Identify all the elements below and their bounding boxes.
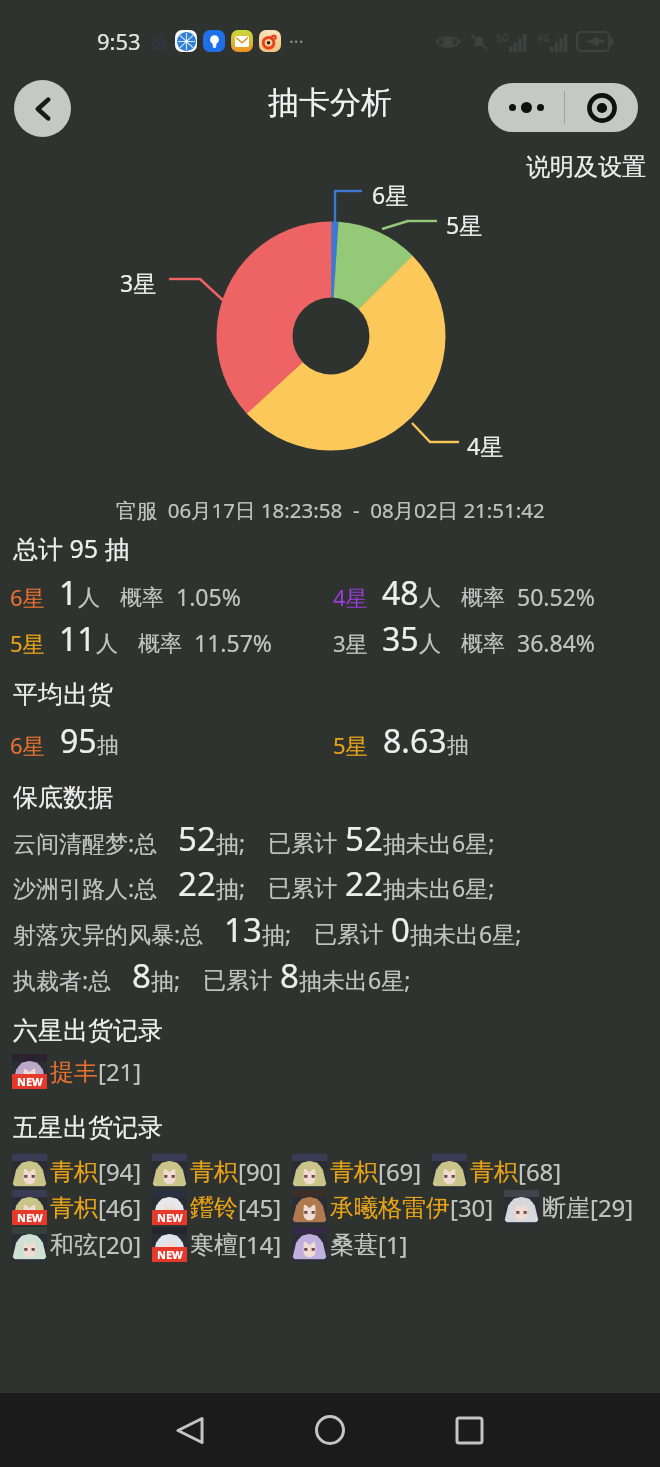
staticText: 平均出货	[13, 679, 113, 710]
button[interactable]: 说明及设置	[526, 152, 646, 182]
staticText: 22	[345, 861, 383, 906]
button[interactable]: 青枳	[432, 1154, 562, 1189]
staticText: 已累计	[268, 874, 337, 903]
staticText: 6星	[10, 582, 45, 612]
staticText: 1.05%	[176, 581, 241, 612]
staticText: [20]	[98, 1228, 142, 1261]
staticText: 8	[132, 953, 151, 998]
staticText: 抽未出6星;	[383, 827, 495, 858]
staticText: 青枳	[470, 1157, 518, 1187]
button[interactable]: 和弦	[12, 1227, 142, 1262]
staticText: 8	[280, 953, 299, 998]
button[interactable]: 青枳	[292, 1154, 422, 1189]
staticText: 36.84%	[517, 627, 595, 658]
staticText: [68]	[518, 1155, 562, 1188]
staticText: 概率	[461, 584, 505, 612]
staticText: 人	[419, 630, 441, 658]
staticText: 人	[78, 584, 100, 612]
staticText: 5星	[446, 209, 483, 240]
staticText: 云间清醒梦:总	[13, 827, 158, 858]
staticText: 概率	[461, 630, 505, 658]
staticText: 5G	[496, 31, 509, 45]
staticText: 抽;	[262, 918, 292, 949]
staticText: 已累计	[314, 920, 383, 949]
staticText: [69]	[378, 1155, 422, 1188]
button[interactable]: Recents	[444, 1405, 494, 1455]
button[interactable]: Home	[305, 1405, 355, 1455]
staticText: 断崖	[542, 1193, 590, 1223]
staticText: 3星	[333, 628, 368, 658]
staticText: 8.63	[383, 719, 447, 763]
staticText: 官服 06月17日 18:23:58 - 08月02日 21:51:42	[116, 496, 545, 524]
staticText: ···	[289, 29, 304, 54]
staticText: 52	[178, 816, 216, 861]
staticText: 9:53	[97, 26, 141, 56]
staticText: 52	[345, 816, 383, 861]
button[interactable]: Back	[14, 80, 71, 137]
staticText: 50.52%	[517, 581, 595, 612]
staticText: NEW	[157, 1210, 183, 1225]
staticText: [45]	[238, 1191, 282, 1224]
staticText: 承曦格雷伊	[330, 1193, 450, 1223]
staticText: 概率	[138, 630, 182, 658]
staticText: [90]	[238, 1155, 282, 1188]
button[interactable]: 承曦格雷伊	[292, 1190, 494, 1225]
staticText: 5星	[10, 628, 45, 658]
staticText: [29]	[590, 1191, 634, 1224]
staticText: 抽;	[216, 872, 246, 903]
staticText: 青枳	[190, 1157, 238, 1187]
staticText: NEW	[17, 1210, 43, 1225]
staticText: 已累计	[268, 829, 337, 858]
button[interactable]: NEW	[152, 1227, 282, 1262]
staticText: 1	[59, 571, 78, 615]
staticText: 概率	[120, 584, 164, 612]
staticText: 4星	[333, 582, 368, 612]
staticText: 和弦	[50, 1230, 98, 1260]
staticText: 五星出货记录	[13, 1112, 163, 1143]
staticText: 人	[96, 630, 118, 658]
staticText: 总计 95 抽	[13, 531, 130, 565]
staticText: 六星出货记录	[13, 1015, 163, 1046]
staticText: [30]	[450, 1191, 494, 1224]
staticText: 抽	[97, 732, 119, 760]
staticText: 48	[382, 571, 419, 615]
button[interactable]: NEW	[152, 1190, 282, 1225]
staticText: 35	[382, 617, 419, 661]
staticText: 鑙铃	[190, 1193, 238, 1223]
staticText: 6星	[10, 730, 45, 760]
button[interactable]: 青枳	[12, 1154, 142, 1189]
staticText: 青枳	[50, 1157, 98, 1187]
button[interactable]: 青枳	[152, 1154, 282, 1189]
staticText: 11.57%	[194, 627, 272, 658]
staticText: 桑葚	[330, 1230, 378, 1260]
staticText: 4星	[467, 430, 504, 461]
staticText: 青枳	[330, 1157, 378, 1187]
staticText: 0	[391, 907, 410, 952]
button[interactable]: More	[488, 83, 564, 132]
button[interactable]: Back	[165, 1405, 215, 1455]
staticText: 提丰	[50, 1057, 98, 1087]
staticText: 3星	[120, 267, 157, 298]
staticText: 抽未出6星;	[383, 872, 495, 903]
staticText: 5星	[333, 730, 368, 760]
button[interactable]: 桑葚	[292, 1227, 408, 1262]
button[interactable]: NEW	[12, 1190, 142, 1225]
staticText: 抽	[447, 732, 469, 760]
staticText: 寒檀	[190, 1230, 238, 1260]
button[interactable]: 断崖	[504, 1190, 634, 1225]
staticText: [1]	[378, 1228, 408, 1261]
staticText: 保底数据	[13, 782, 113, 813]
staticText: [14]	[238, 1228, 282, 1261]
staticText: 抽;	[216, 827, 246, 858]
staticText: 抽未出6星;	[299, 964, 411, 995]
staticText: 抽卡分析	[268, 83, 392, 122]
staticText: 22	[178, 861, 216, 906]
staticText: [21]	[98, 1055, 142, 1088]
staticText: [94]	[98, 1155, 142, 1188]
button[interactable]: Close mini program	[565, 83, 638, 132]
staticText: 射落灾异的风暴:总	[13, 918, 204, 949]
staticText: 沙洲引路人:总	[13, 872, 158, 903]
staticText: 抽;	[151, 964, 181, 995]
staticText: NEW	[17, 1074, 43, 1089]
button[interactable]: NEW	[12, 1054, 142, 1089]
